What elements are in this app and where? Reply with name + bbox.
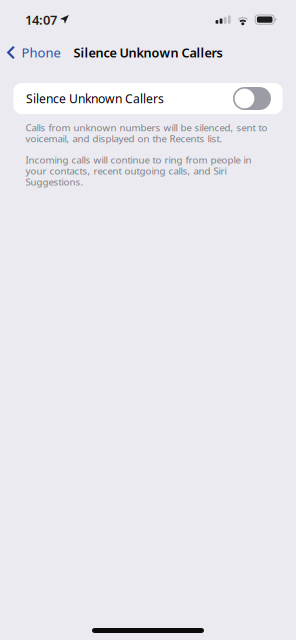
button[interactable]: Phone — [0, 39, 67, 66]
button[interactable]: Silence Unknown Callers — [13, 83, 282, 114]
staticText: Phone — [22, 44, 61, 61]
staticText: Incoming calls will continue to ring fro… — [25, 153, 251, 188]
staticText: Calls from unknown numbers will be silen… — [25, 121, 267, 145]
staticText: Silence Unknown Callers — [26, 90, 164, 107]
staticText: 14:07 — [25, 11, 57, 28]
staticText: Silence Unknown Callers — [73, 44, 222, 61]
